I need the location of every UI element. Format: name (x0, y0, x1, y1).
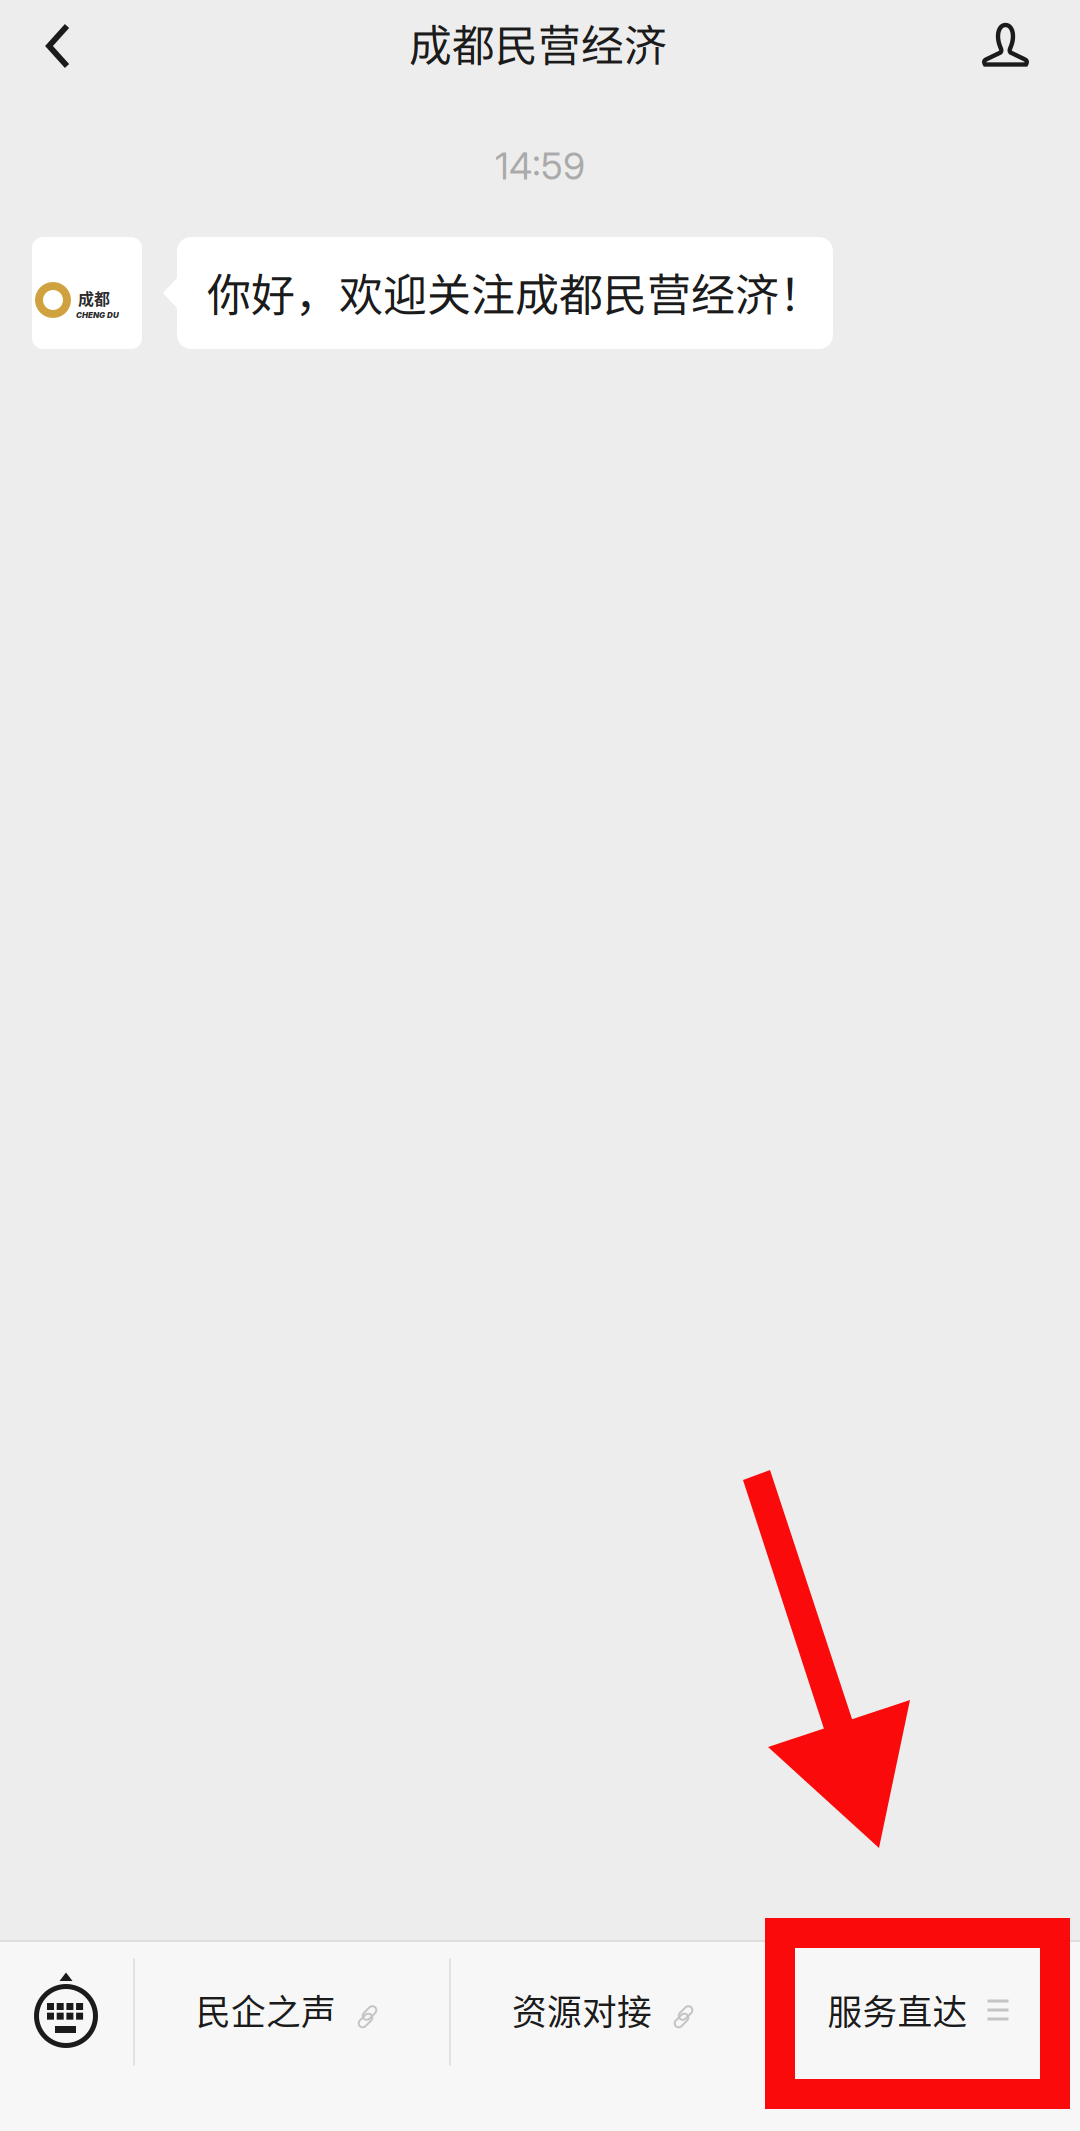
button[interactable]: Keyboard (0, 1942, 133, 2082)
button[interactable]: 服务直达 (767, 1942, 1080, 2082)
button[interactable]: 民企之声 (135, 1942, 449, 2082)
staticText: 成都 (78, 286, 110, 310)
staticText: 服务直达 (827, 1985, 967, 2035)
button[interactable]: 资源对接 (451, 1942, 765, 2082)
staticText: 你好，欢迎关注成都民营经济！ (207, 260, 823, 324)
button[interactable]: Back (0, 0, 104, 92)
staticText: 资源对接 (512, 1985, 652, 2035)
staticText: 民企之声 (196, 1985, 336, 2035)
button[interactable]: Profile (960, 0, 1080, 92)
staticText: CHENG DU (76, 310, 119, 320)
staticText: 成都民营经济 (409, 12, 667, 74)
staticText: 14:59 (495, 143, 585, 189)
